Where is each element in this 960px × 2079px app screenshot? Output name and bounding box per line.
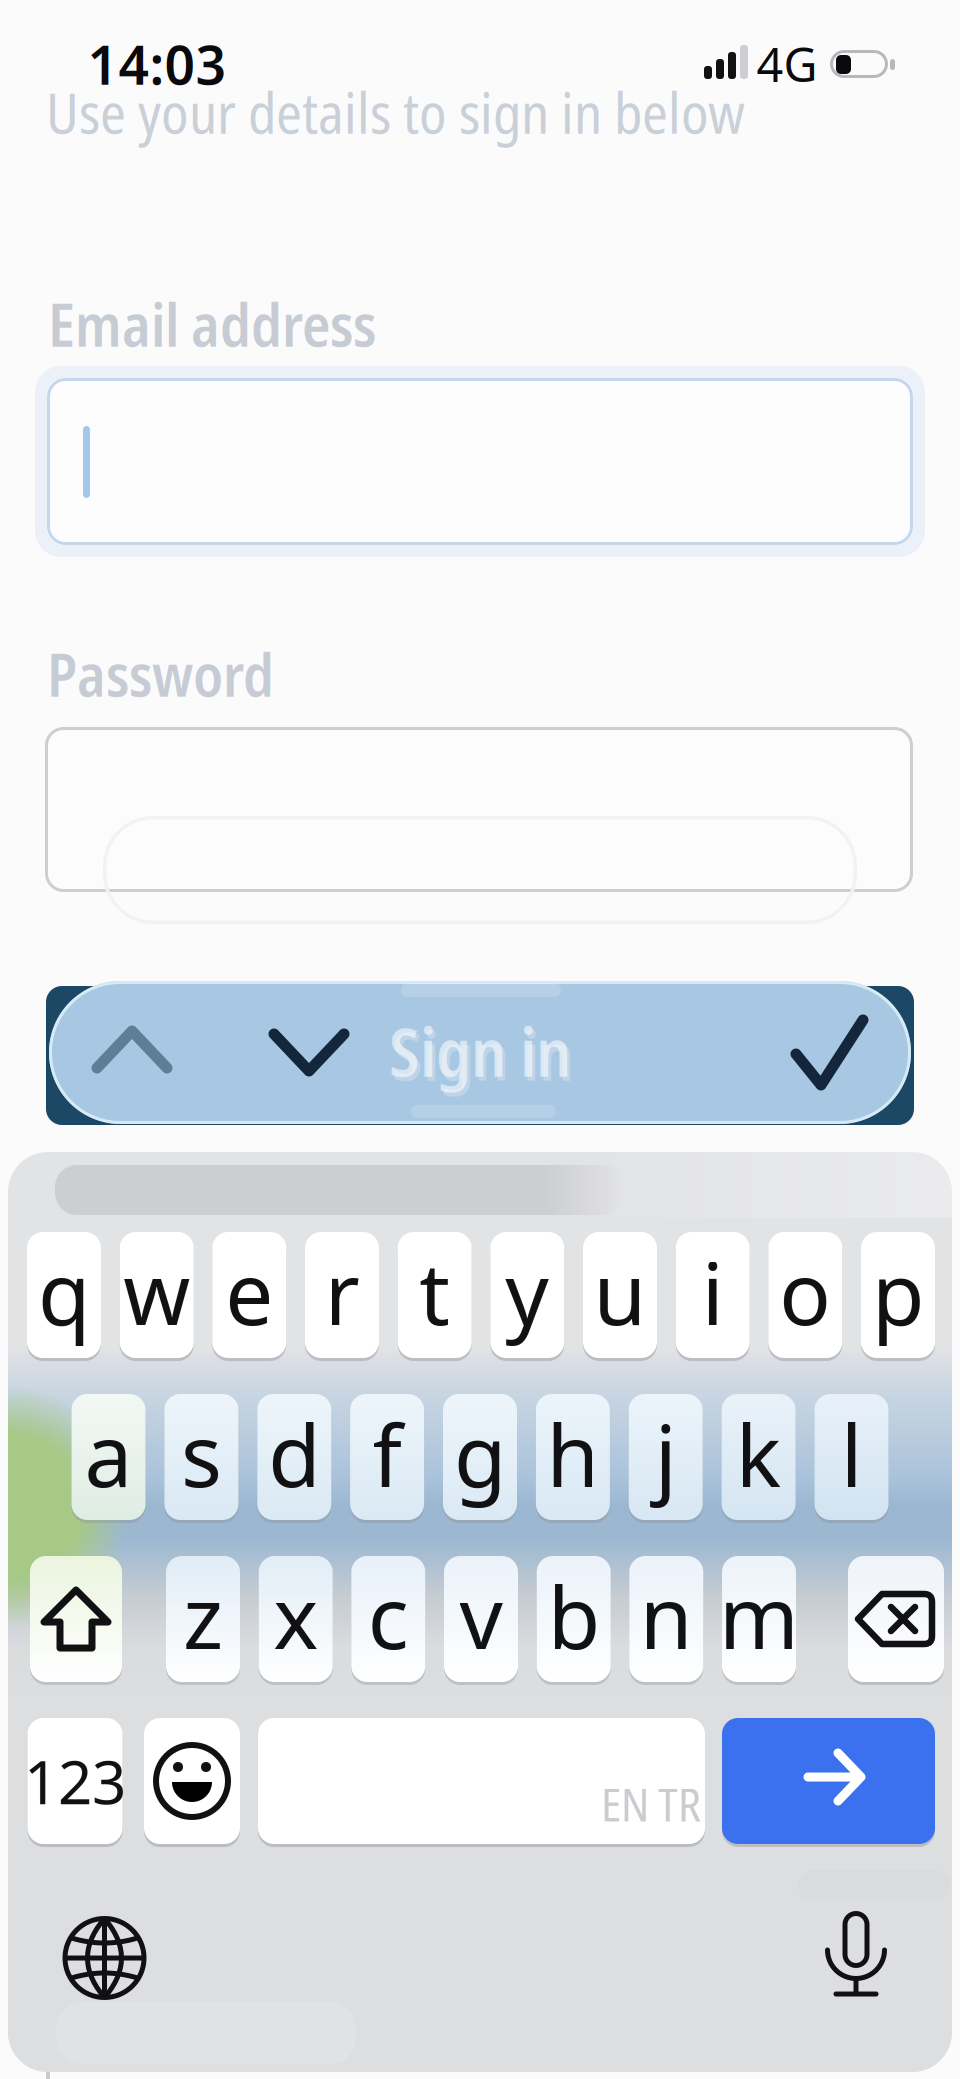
button[interactable]: t: [398, 1232, 472, 1358]
button[interactable]: g: [443, 1394, 517, 1520]
staticText: e: [225, 1235, 273, 1349]
button[interactable]: Space: [258, 1718, 705, 1844]
button[interactable]: n: [629, 1556, 703, 1682]
staticText: k: [736, 1397, 782, 1511]
button[interactable]: o: [768, 1232, 842, 1358]
button[interactable]: e: [212, 1232, 286, 1358]
button[interactable]: Return: [722, 1718, 935, 1844]
staticText: a: [84, 1397, 132, 1511]
staticText: r: [324, 1235, 359, 1349]
staticText: w: [123, 1235, 190, 1349]
staticText: Use your details to sign in below: [46, 74, 745, 150]
button[interactable]: Emoji: [144, 1718, 240, 1844]
staticText: h: [546, 1397, 599, 1511]
staticText: g: [454, 1397, 506, 1511]
button[interactable]: Dictate: [822, 1911, 890, 1997]
button[interactable]: v: [444, 1556, 518, 1682]
staticText: s: [181, 1397, 222, 1511]
staticText: t: [419, 1235, 450, 1349]
staticText: n: [640, 1559, 693, 1673]
staticText: i: [702, 1235, 724, 1349]
button[interactable]: p: [861, 1232, 935, 1358]
button[interactable]: a: [71, 1394, 145, 1520]
button[interactable]: Email address: [35, 366, 925, 557]
button[interactable]: x: [259, 1556, 333, 1682]
staticText: 4G: [756, 33, 817, 95]
staticText: Password: [47, 634, 274, 714]
staticText: l: [840, 1397, 862, 1511]
staticText: j: [655, 1397, 677, 1511]
button[interactable]: j: [629, 1394, 703, 1520]
button[interactable]: z: [166, 1556, 240, 1682]
button[interactable]: Done: [744, 981, 910, 1120]
staticText: Email address: [48, 284, 376, 364]
button[interactable]: Password: [45, 727, 913, 892]
staticText: v: [459, 1559, 502, 1673]
staticText: q: [38, 1235, 90, 1349]
button[interactable]: f: [350, 1394, 424, 1520]
button[interactable]: m: [722, 1556, 796, 1682]
staticText: EN TR: [601, 1773, 701, 1835]
staticText: m: [719, 1559, 799, 1673]
staticText: o: [779, 1235, 831, 1349]
button[interactable]: Next keyboard: [62, 1916, 146, 2000]
staticText: b: [548, 1559, 600, 1673]
staticText: Sign in: [389, 1006, 571, 1096]
button[interactable]: b: [537, 1556, 611, 1682]
staticText: d: [268, 1397, 320, 1511]
staticText: p: [872, 1235, 924, 1349]
button[interactable]: r: [305, 1232, 379, 1358]
staticText: y: [505, 1235, 549, 1349]
button[interactable]: s: [164, 1394, 238, 1520]
staticText: x: [273, 1559, 318, 1673]
staticText: 14:03: [87, 29, 226, 99]
button[interactable]: d: [257, 1394, 331, 1520]
button[interactable]: Previous field: [49, 981, 215, 1120]
button[interactable]: 123: [0, 1718, 155, 1844]
button[interactable]: i: [676, 1232, 750, 1358]
staticText: c: [368, 1559, 409, 1673]
staticText: 123: [24, 1741, 126, 1821]
staticText: Sign in: [392, 1010, 574, 1100]
button[interactable]: Next field: [226, 981, 392, 1120]
button[interactable]: k: [722, 1394, 796, 1520]
button[interactable]: h: [536, 1394, 610, 1520]
button[interactable]: w: [120, 1232, 194, 1358]
button[interactable]: Shift: [30, 1556, 122, 1682]
button[interactable]: q: [27, 1232, 101, 1358]
button[interactable]: c: [351, 1556, 425, 1682]
button[interactable]: Delete: [848, 1556, 944, 1682]
button[interactable]: u: [583, 1232, 657, 1358]
button[interactable]: Sign in: [46, 986, 914, 1125]
button[interactable]: l: [814, 1394, 888, 1520]
staticText: z: [183, 1559, 223, 1673]
button[interactable]: y: [490, 1232, 564, 1358]
staticText: u: [593, 1235, 646, 1349]
staticText: f: [373, 1397, 402, 1511]
